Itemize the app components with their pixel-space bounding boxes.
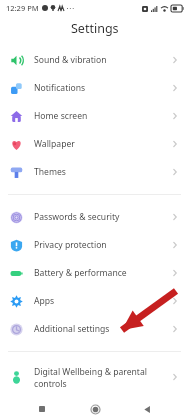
button[interactable]: Privacy protection	[0, 231, 189, 259]
button[interactable]: Battery & performance	[0, 259, 189, 287]
staticText: Passwords & security	[34, 211, 120, 223]
button[interactable]: Notifications	[0, 74, 189, 102]
staticText: Digital Wellbeing & parental controls	[34, 366, 166, 389]
button[interactable]: Themes	[0, 158, 189, 186]
staticText: ⋯	[66, 4, 74, 13]
staticText: 12:29 PM	[6, 3, 39, 13]
button[interactable]: Home screen	[0, 102, 189, 130]
staticText: Home screen	[34, 110, 88, 122]
button[interactable]: Home	[84, 398, 106, 420]
staticText: Sound & vibration	[34, 54, 107, 66]
button[interactable]: Back	[136, 398, 158, 420]
staticText: Privacy protection	[34, 239, 107, 251]
staticText: Additional settings	[34, 323, 110, 335]
staticText: Battery & performance	[34, 267, 127, 279]
button[interactable]: Additional settings	[0, 315, 189, 343]
button[interactable]: Digital Wellbeing & parental controls	[0, 360, 189, 394]
staticText: Apps	[34, 295, 55, 307]
button[interactable]: Passwords & security	[0, 203, 189, 231]
button[interactable]: Sound & vibration	[0, 46, 189, 74]
button[interactable]: Recent apps	[31, 398, 53, 420]
staticText: Themes	[34, 166, 66, 178]
staticText: Settings	[71, 20, 119, 37]
staticText: Wallpaper	[34, 138, 75, 150]
staticText: Notifications	[34, 82, 86, 94]
button[interactable]: Apps	[0, 287, 189, 315]
button[interactable]: Wallpaper	[0, 130, 189, 158]
